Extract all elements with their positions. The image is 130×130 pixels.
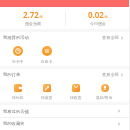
button[interactable]: 查看全部 xyxy=(102,72,124,77)
staticText: 我的收藏夹 xyxy=(3,121,25,126)
staticText: 佣金余额 xyxy=(25,21,41,26)
staticText: 待付款 xyxy=(12,95,24,100)
button[interactable]: 0.02 xyxy=(65,7,130,26)
staticText: 查看全部 xyxy=(102,35,119,40)
staticText: 查看全部 xyxy=(102,72,119,77)
staticText: 元 xyxy=(39,14,43,19)
button[interactable]: 办卡中 xyxy=(4,42,32,64)
button[interactable]: 待收货 xyxy=(61,79,90,100)
button[interactable]: 待发货 xyxy=(32,79,61,100)
staticText: 我看过的店铺 xyxy=(3,109,29,114)
staticText: 白条卡 xyxy=(41,59,53,64)
staticText: 元 xyxy=(104,14,108,19)
other: Open xyxy=(120,73,124,77)
button[interactable]: 退款/售后 xyxy=(90,79,119,100)
other: Open xyxy=(117,122,121,126)
other: Open xyxy=(117,109,121,113)
button[interactable]: 我看过的店铺 xyxy=(0,105,130,117)
button[interactable]: 白条卡 xyxy=(32,42,61,64)
button[interactable]: 2.72 xyxy=(0,7,65,26)
staticText: 办卡中 xyxy=(12,59,24,64)
staticText: 2.72 xyxy=(23,9,39,20)
staticText: 我的订单 xyxy=(3,72,21,77)
button[interactable]: 我的收藏夹 xyxy=(0,118,130,129)
staticText: 我推荐的活动 xyxy=(3,35,29,40)
staticText: 退款/售后 xyxy=(96,95,113,100)
staticText: 0.02 xyxy=(88,9,104,20)
staticText: 待发货 xyxy=(41,95,53,100)
staticText: 今日佣金 xyxy=(90,21,106,26)
button[interactable]: 待付款 xyxy=(4,79,32,100)
other: Open xyxy=(120,36,124,40)
staticText: 待收货 xyxy=(70,95,82,100)
button[interactable]: 查看全部 xyxy=(102,35,124,40)
